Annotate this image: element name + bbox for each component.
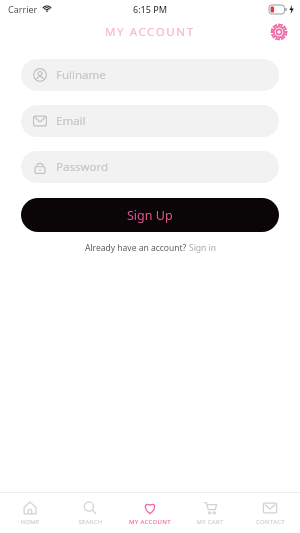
staticText: Fullname (56, 67, 106, 83)
button[interactable]: Settings (268, 21, 290, 43)
button[interactable]: SEARCH (60, 497, 120, 530)
staticText: HOME (20, 518, 40, 526)
staticText: CONTACT (256, 518, 285, 526)
button[interactable]: MY CART (180, 497, 240, 530)
staticText: Password (56, 159, 109, 175)
staticText: Sign in (189, 242, 216, 254)
button[interactable]: MY ACCOUNT (120, 497, 180, 530)
button[interactable]: HOME (0, 497, 60, 530)
button[interactable]: Email (21, 105, 279, 137)
button[interactable]: Sign Up (21, 198, 279, 232)
button[interactable]: Fullname (21, 59, 279, 91)
staticText: SEARCH (78, 518, 103, 526)
staticText: Sign Up (127, 207, 173, 224)
staticText: MY ACCOUNT (105, 24, 195, 40)
button[interactable]: Password (21, 151, 279, 183)
staticText: MY ACCOUNT (129, 518, 171, 526)
staticText: 6:15 PM (133, 3, 167, 15)
staticText: Already have an account? (85, 242, 189, 254)
staticText: MY CART (196, 518, 224, 526)
button[interactable]: CONTACT (240, 497, 300, 530)
staticText: Email (56, 113, 86, 129)
button[interactable]: Sign in (189, 242, 216, 254)
staticText: Carrier (8, 3, 38, 15)
